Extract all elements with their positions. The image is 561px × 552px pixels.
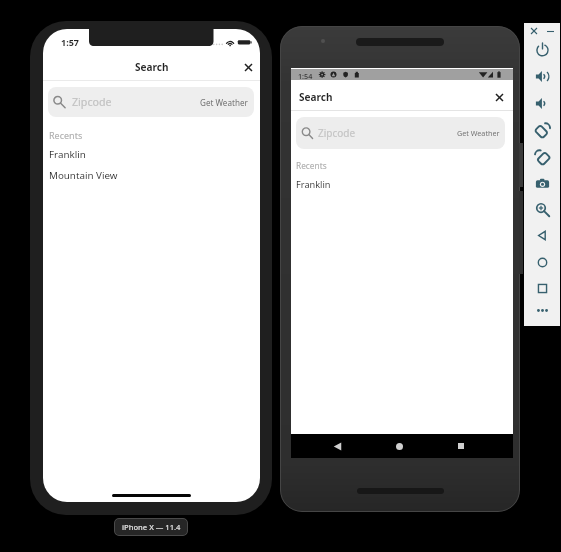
- staticText: Recents: [296, 160, 327, 171]
- button[interactable]: Get Weather: [200, 97, 248, 108]
- staticText: Franklin: [296, 178, 331, 191]
- button[interactable]: Screenshot: [524, 170, 560, 196]
- button[interactable]: Volume down: [524, 90, 560, 116]
- button[interactable]: Franklin: [43, 144, 260, 165]
- staticText: Recents: [49, 129, 83, 141]
- button[interactable]: Volume up: [524, 63, 560, 89]
- staticText: 1:57: [61, 36, 79, 48]
- button[interactable]: Home: [385, 434, 414, 458]
- staticText: Search: [135, 60, 169, 74]
- button[interactable]: More: [524, 297, 560, 323]
- button[interactable]: Rotate right: [524, 144, 560, 170]
- staticText: Franklin: [49, 148, 86, 161]
- staticText: 1:54: [298, 71, 313, 81]
- button[interactable]: Mountain View: [43, 165, 260, 186]
- button[interactable]: Back: [524, 222, 560, 248]
- button[interactable]: Zipcode: [48, 87, 254, 117]
- button[interactable]: Rotate left: [524, 117, 560, 143]
- button[interactable]: Zipcode: [296, 117, 505, 149]
- button[interactable]: Power: [524, 36, 560, 62]
- button[interactable]: Minimize: [544, 25, 556, 37]
- staticText: Mountain View: [49, 169, 118, 182]
- button[interactable]: Close: [238, 57, 259, 78]
- button[interactable]: Close: [490, 88, 508, 106]
- button[interactable]: Franklin: [291, 174, 513, 194]
- button[interactable]: Zoom: [524, 196, 560, 222]
- button[interactable]: Home: [524, 249, 560, 275]
- button[interactable]: Close: [528, 25, 540, 37]
- staticText: iPhone X — 11.4: [122, 522, 181, 532]
- staticText: Zipcode: [72, 95, 112, 110]
- staticText: Zipcode: [318, 126, 356, 140]
- button[interactable]: Recents: [446, 434, 475, 458]
- staticText: Search: [299, 90, 333, 104]
- button[interactable]: Overview: [524, 275, 560, 301]
- button[interactable]: Back: [323, 434, 352, 458]
- button[interactable]: Get Weather: [457, 128, 500, 138]
